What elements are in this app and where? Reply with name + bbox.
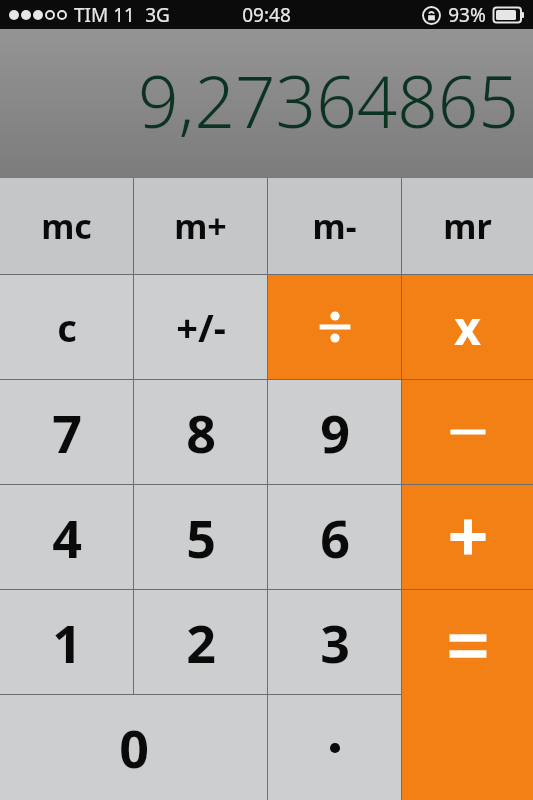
button[interactable]: c	[0, 275, 133, 379]
button[interactable]: 2	[134, 590, 267, 694]
button[interactable]: mr	[402, 178, 533, 274]
staticText: 8	[186, 397, 216, 468]
staticText: x	[454, 296, 481, 359]
staticText: +/-	[176, 301, 226, 353]
staticText: 09:48	[242, 2, 291, 28]
button[interactable]: Subtract	[402, 380, 533, 484]
staticText: mr	[443, 203, 492, 249]
staticText: 9	[320, 397, 350, 468]
button[interactable]: 7	[0, 380, 133, 484]
staticText: 4	[52, 502, 82, 573]
staticText: 7	[52, 397, 82, 468]
staticText: 2	[186, 607, 216, 678]
staticText: mc	[41, 203, 92, 249]
staticText: m+	[174, 203, 227, 249]
button[interactable]: Divide	[268, 275, 401, 379]
staticText: 93%	[448, 2, 486, 28]
button[interactable]: 5	[134, 485, 267, 589]
staticText: 1	[52, 607, 82, 678]
button[interactable]: 8	[134, 380, 267, 484]
staticText: 5	[186, 502, 216, 573]
button[interactable]: 1	[0, 590, 133, 694]
staticText: 3G	[145, 2, 170, 28]
button[interactable]: Decimal point	[268, 695, 401, 800]
staticText: m-	[312, 203, 357, 249]
staticText: TIM 11	[74, 2, 135, 28]
staticText: 6	[320, 502, 350, 573]
button[interactable]: 4	[0, 485, 133, 589]
button[interactable]: 9	[268, 380, 401, 484]
staticText: 3	[320, 607, 350, 678]
staticText: 9,27364865	[138, 52, 519, 149]
button[interactable]: 6	[268, 485, 401, 589]
button[interactable]: 0	[0, 695, 267, 800]
button[interactable]: 3	[268, 590, 401, 694]
staticText: c	[57, 301, 77, 353]
button[interactable]: Equals	[402, 590, 533, 800]
button[interactable]: Multiply	[402, 275, 533, 379]
button[interactable]: +/-	[134, 275, 267, 379]
button[interactable]: m+	[134, 178, 267, 274]
staticText: 0	[119, 712, 149, 783]
button[interactable]: m-	[268, 178, 401, 274]
button[interactable]: mc	[0, 178, 133, 274]
button[interactable]: Add	[402, 485, 533, 589]
